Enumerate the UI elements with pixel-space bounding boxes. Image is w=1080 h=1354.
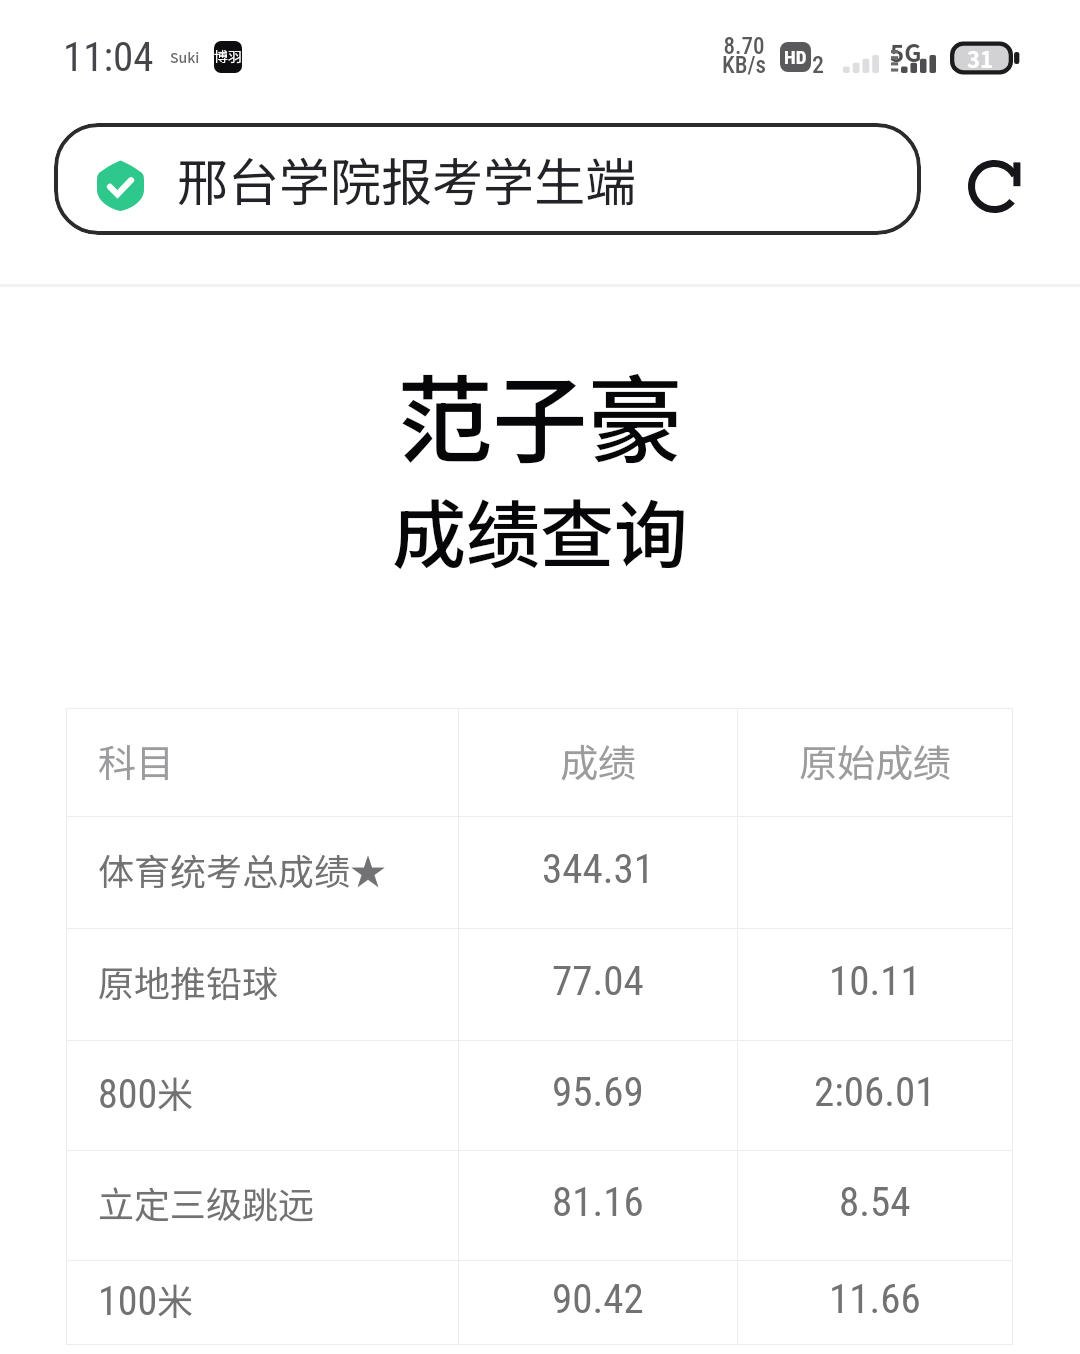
staticText: 8.70 KB/s: [714, 33, 774, 79]
staticText: HD: [784, 46, 807, 68]
staticText: 科目: [98, 733, 175, 788]
button[interactable]: 科目: [66, 709, 1013, 816]
staticText: 344.31: [542, 845, 655, 893]
staticText: 范子豪: [0, 345, 1080, 483]
staticText: 8.54: [839, 1178, 911, 1226]
button[interactable]: 立定三级跳远: [66, 1151, 1013, 1260]
button[interactable]: 100米: [66, 1261, 1013, 1344]
staticText: 博羽: [214, 46, 242, 66]
staticText: 原地推铅球: [98, 955, 279, 1007]
staticText: 成绩查询: [0, 476, 1080, 583]
staticText: 11.66: [829, 1275, 921, 1323]
staticText: 10.11: [829, 957, 921, 1005]
staticText: 体育统考总成绩★: [98, 843, 387, 895]
button[interactable]: 800米: [66, 1041, 1013, 1150]
staticText: Suki: [170, 47, 200, 67]
staticText: 100米: [98, 1273, 194, 1325]
staticText: 95.69: [552, 1068, 644, 1116]
staticText: 2: [812, 51, 824, 79]
staticText: 立定三级跳远: [98, 1176, 315, 1228]
button[interactable]: 邢台学院报考学生端: [54, 123, 921, 235]
staticText: 90.42: [552, 1275, 644, 1323]
staticText: 81.16: [552, 1178, 644, 1226]
staticText: 5G: [890, 34, 922, 69]
staticText: 77.04: [552, 957, 644, 1005]
staticText: 成绩: [560, 733, 637, 788]
button[interactable]: 体育统考总成绩★: [66, 817, 1013, 928]
staticText: 2:06.01: [814, 1068, 936, 1116]
staticText: 邢台学院报考学生端: [177, 142, 637, 216]
button[interactable]: Refresh: [967, 159, 1022, 214]
button[interactable]: 原地推铅球: [66, 929, 1013, 1040]
staticText: 800米: [98, 1066, 194, 1118]
staticText: 31: [967, 42, 993, 74]
staticText: 原始成绩: [799, 733, 952, 788]
staticText: 11:04: [63, 33, 154, 81]
